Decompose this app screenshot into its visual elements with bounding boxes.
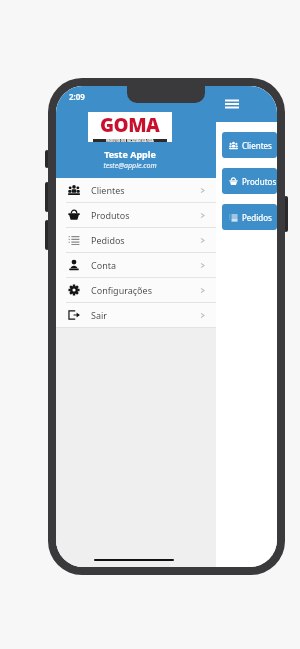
staticText: Clientes — [91, 184, 199, 196]
staticText: PRODUTOS QUE FACILITAM SUA VIDA — [106, 139, 154, 142]
button[interactable]: Produtos — [56, 203, 216, 228]
button[interactable]: Clientes — [56, 178, 216, 203]
button[interactable]: Produtos — [222, 168, 277, 194]
button[interactable]: Open menu — [224, 96, 240, 112]
button[interactable]: Pedidos — [222, 204, 277, 230]
staticText: 2:09 — [69, 91, 85, 102]
button[interactable]: Pedidos — [56, 228, 216, 253]
button[interactable]: Conta — [56, 253, 216, 278]
staticText: Sair — [91, 309, 199, 321]
staticText: Configurações — [91, 284, 199, 296]
staticText: Pedidos — [91, 234, 199, 246]
staticText: Produtos — [242, 176, 277, 187]
staticText: Teste Apple — [56, 148, 210, 160]
staticText: Conta — [91, 259, 199, 271]
button[interactable]: Sair — [56, 303, 216, 328]
button[interactable]: Clientes — [222, 132, 277, 158]
button[interactable]: Configurações — [56, 278, 216, 303]
staticText: Produtos — [91, 209, 199, 221]
staticText: Pedidos — [242, 212, 272, 223]
staticText: teste@apple.com — [56, 161, 210, 171]
staticText: Clientes — [242, 140, 272, 151]
staticText: GOMA — [100, 112, 160, 138]
